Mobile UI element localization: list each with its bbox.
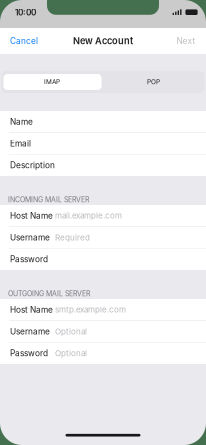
staticText: New Account [73, 35, 133, 46]
button[interactable]: IMAP [1, 71, 102, 93]
button[interactable]: Username [0, 227, 206, 248]
staticText: Email [10, 138, 31, 148]
staticText: Password [10, 348, 48, 358]
staticText: POP [147, 78, 160, 86]
staticText: Host Name [10, 211, 53, 221]
button[interactable]: Name [0, 111, 206, 132]
staticText: 10:00 [15, 7, 36, 17]
button[interactable]: POP [102, 71, 204, 93]
button[interactable]: Host Name [0, 205, 206, 226]
button[interactable]: Description [0, 155, 206, 176]
staticText: Description [10, 160, 55, 170]
button[interactable]: Email [0, 133, 206, 154]
staticText: Host Name [10, 305, 53, 315]
staticText: Optional [55, 327, 87, 336]
staticText: Optional [55, 348, 87, 358]
button[interactable]: Password [0, 343, 206, 364]
staticText: Name [10, 117, 33, 127]
button[interactable]: Username [0, 321, 206, 342]
staticText: Username [10, 232, 50, 242]
button[interactable]: Next [168, 28, 206, 54]
staticText: INCOMING MAIL SERVER [8, 196, 89, 204]
staticText: OUTGOING MAIL SERVER [8, 290, 90, 298]
staticText: mail.example.com [55, 211, 122, 221]
button[interactable]: Host Name [0, 299, 206, 320]
staticText: Required [55, 233, 90, 242]
staticText: Next [176, 36, 195, 46]
button[interactable]: Cancel [0, 28, 46, 54]
staticText: Password [10, 254, 48, 264]
button[interactable]: Password [0, 249, 206, 270]
staticText: smtp.example.com [55, 305, 126, 315]
staticText: Username [10, 326, 50, 336]
staticText: Cancel [10, 36, 38, 46]
staticText: IMAP [44, 78, 60, 86]
